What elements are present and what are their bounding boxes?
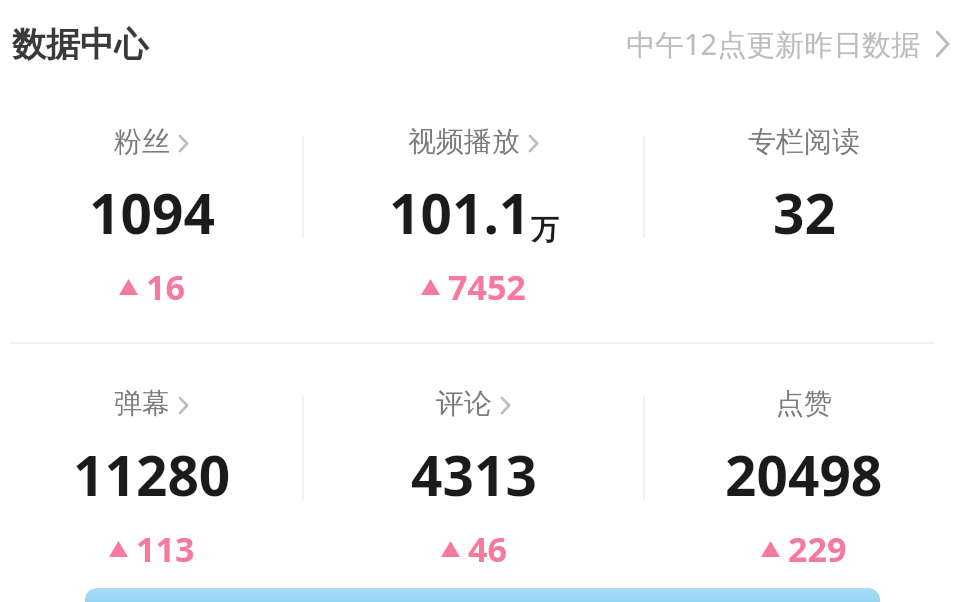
- button[interactable]: 视频播放: [303, 124, 644, 310]
- staticText: 万: [531, 212, 559, 247]
- staticText: 点赞: [776, 386, 832, 421]
- staticText: 16: [146, 264, 185, 310]
- staticText: 101.1: [389, 175, 531, 250]
- staticText: 粉丝: [114, 124, 170, 159]
- staticText: 评论: [436, 386, 492, 421]
- staticText: 中午12点更新昨日数据: [626, 24, 921, 64]
- button[interactable]: 弹幕: [0, 386, 303, 572]
- button[interactable]: [85, 588, 880, 602]
- staticText: 46: [468, 526, 507, 572]
- button[interactable]: 点赞: [644, 386, 964, 572]
- staticText: 4313: [411, 437, 537, 512]
- button[interactable]: 评论: [303, 386, 644, 572]
- staticText: 229: [788, 526, 847, 572]
- button[interactable]: 中午12点更新昨日数据: [626, 24, 950, 64]
- staticText: 视频播放: [408, 124, 520, 159]
- staticText: 113: [136, 526, 195, 572]
- staticText: 32: [773, 175, 836, 250]
- button[interactable]: 专栏阅读: [644, 124, 964, 250]
- staticText: 11280: [73, 437, 231, 512]
- button[interactable]: 粉丝: [0, 124, 303, 310]
- button[interactable]: 数据中心: [12, 23, 148, 66]
- staticText: 弹幕: [114, 386, 170, 421]
- staticText: 7452: [448, 264, 526, 310]
- staticText: 1094: [89, 175, 215, 250]
- staticText: 专栏阅读: [748, 124, 860, 159]
- staticText: 20498: [725, 437, 883, 512]
